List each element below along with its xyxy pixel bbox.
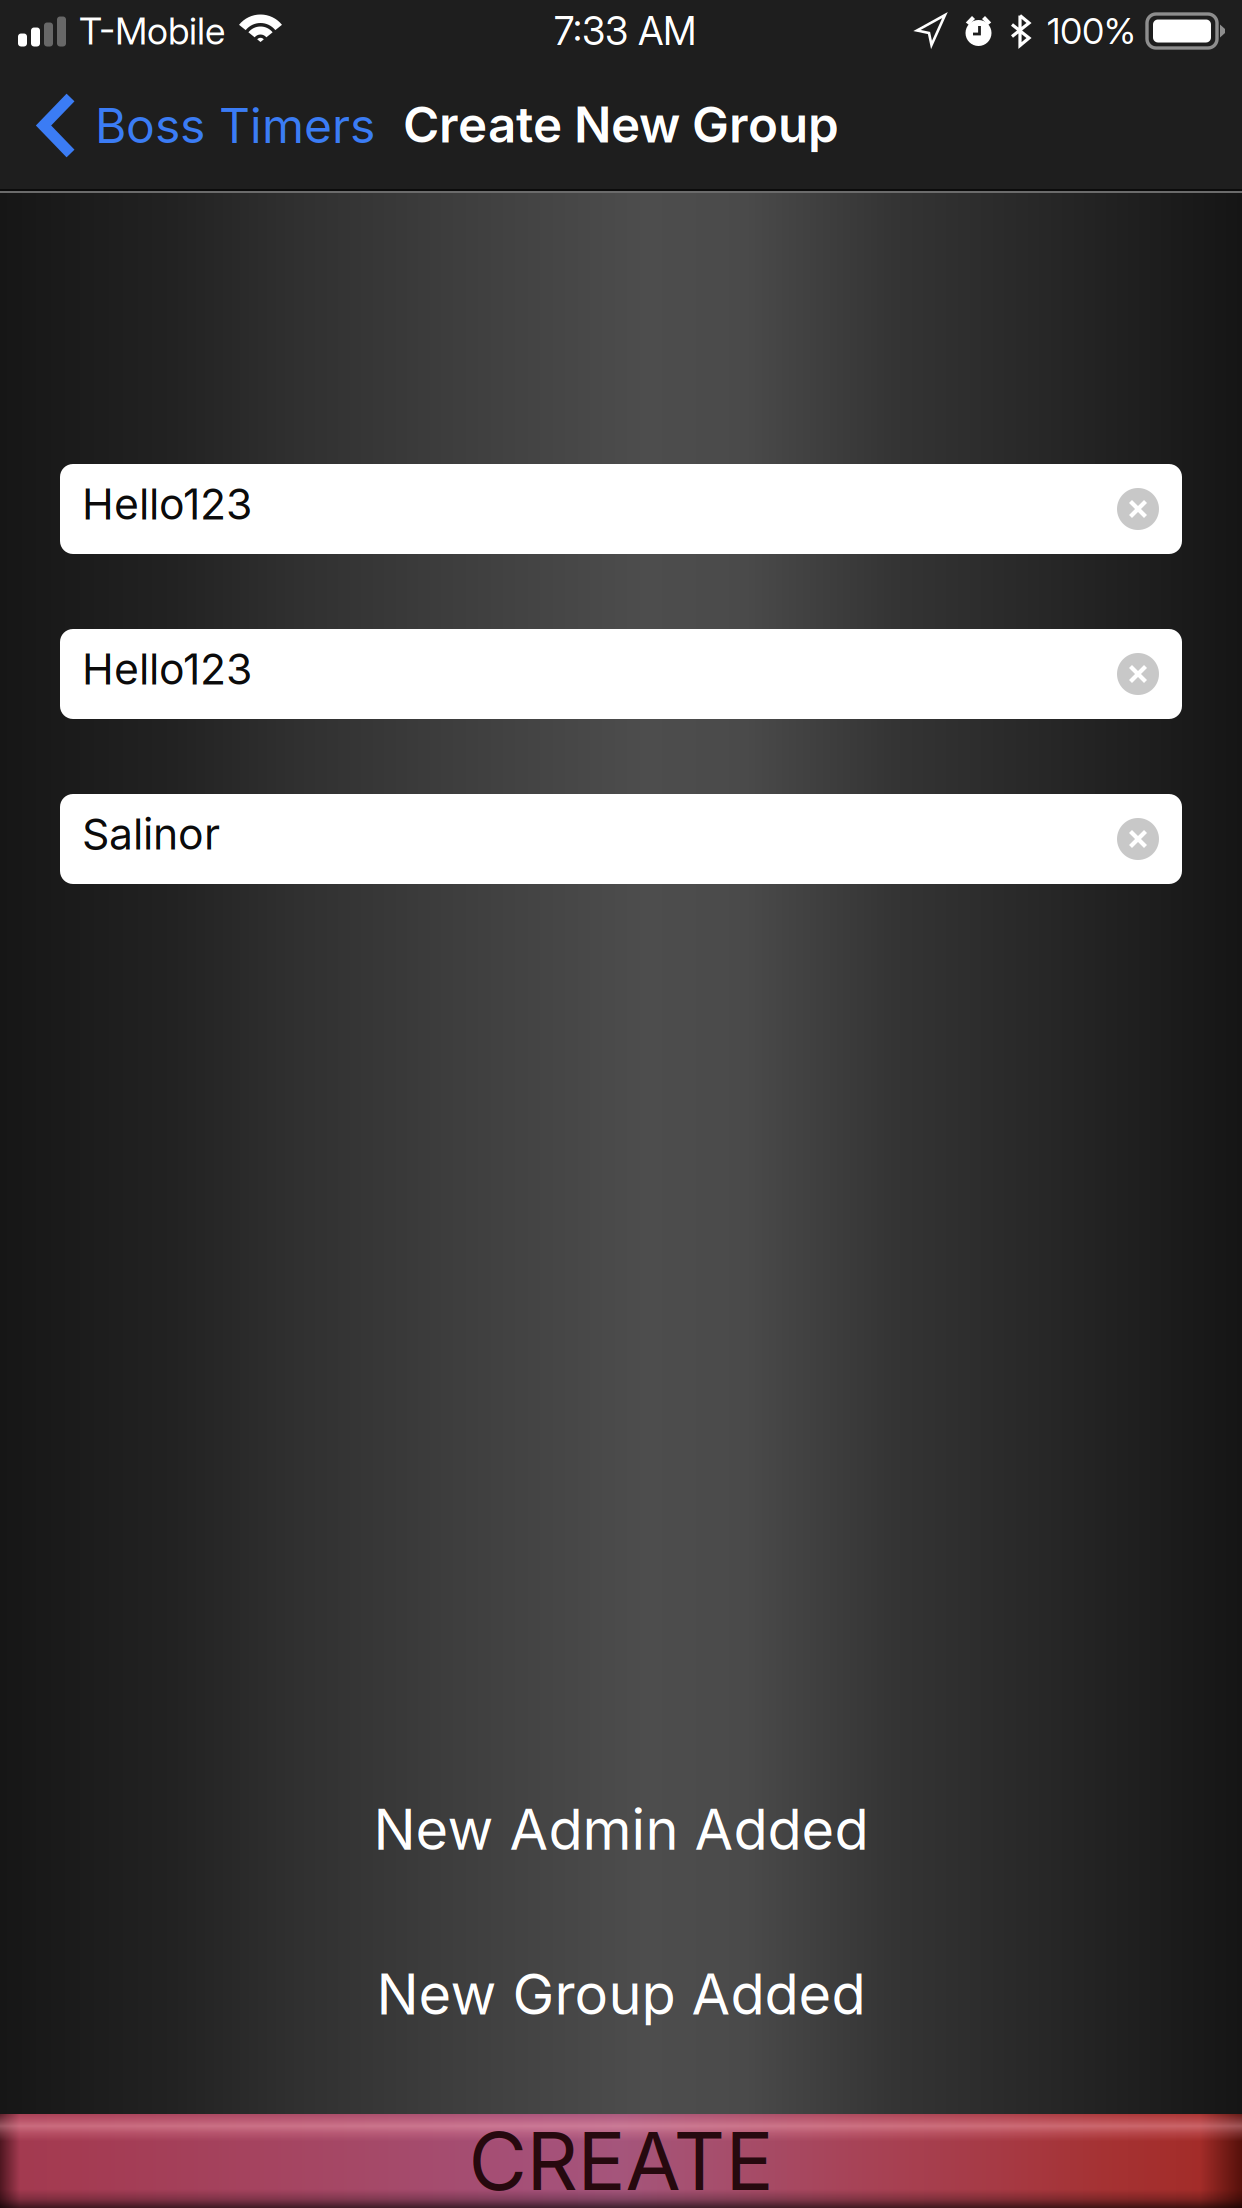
button[interactable]: CREATE [0,2114,1242,2208]
button[interactable]: Boss Timers [0,80,375,174]
staticText: 7:33 AM [554,8,696,54]
staticText: CREATE [468,2113,773,2208]
staticText: Salinor [82,808,220,860]
staticText: 100% [1047,9,1136,53]
button[interactable]: Clear text [1117,818,1159,860]
staticText: New Admin Added [373,1795,868,1863]
staticText: T-Mobile [79,8,225,54]
staticText: Create New Group [403,95,839,154]
staticText: New Group Added [376,1960,865,2028]
staticText: Hello123 [82,478,252,530]
staticText: Boss Timers [95,96,375,155]
button[interactable]: Clear text [1117,653,1159,695]
button[interactable]: Clear text [1117,488,1159,530]
staticText: Hello123 [82,643,252,695]
